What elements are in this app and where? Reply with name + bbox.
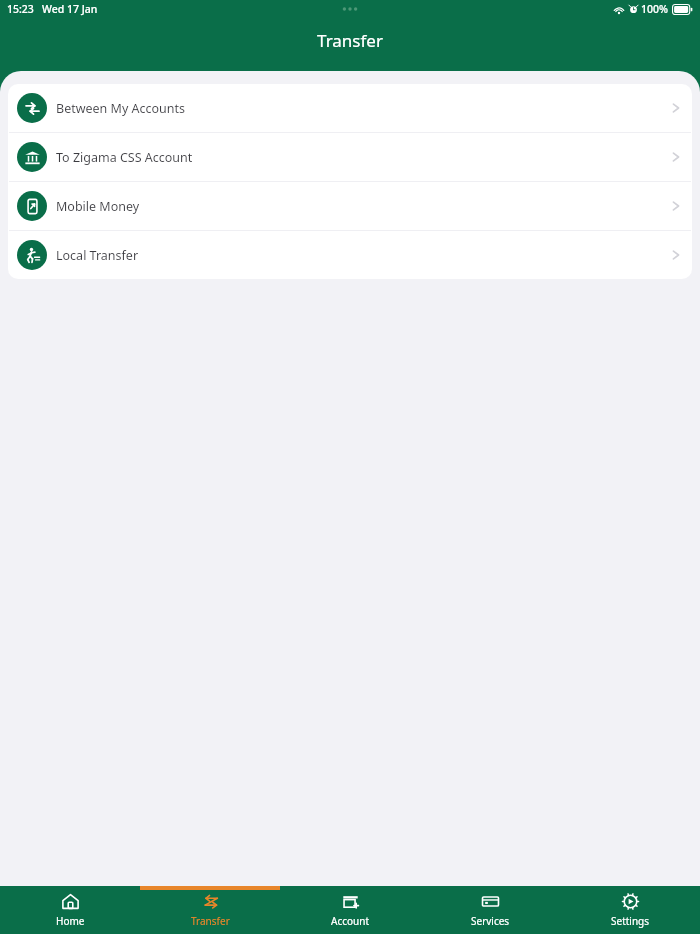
staticText: Transfer [191, 914, 230, 928]
staticText: Settings [611, 914, 650, 928]
button[interactable]: Services [420, 886, 560, 934]
staticText: Wed 17 Jan [42, 2, 98, 16]
staticText: 15:23 [7, 2, 34, 16]
staticText: Local Transfer [56, 247, 139, 264]
staticText: Mobile Money [56, 198, 140, 215]
button[interactable]: Settings [560, 886, 700, 934]
staticText: 100% [641, 2, 668, 16]
staticText: Between My Accounts [56, 100, 186, 117]
staticText: Transfer [0, 29, 700, 52]
staticText: Services [471, 914, 510, 928]
button[interactable]: Local Transfer [8, 231, 692, 279]
staticText: Account [331, 914, 370, 928]
button[interactable]: Account [280, 886, 420, 934]
button[interactable]: Mobile Money [8, 182, 692, 230]
staticText: Home [56, 914, 85, 928]
button[interactable]: Home [0, 886, 140, 934]
staticText: To Zigama CSS Account [56, 149, 193, 166]
button[interactable]: Between My Accounts [8, 84, 692, 132]
button[interactable]: Transfer [140, 886, 280, 934]
button[interactable]: To Zigama CSS Account [8, 133, 692, 181]
